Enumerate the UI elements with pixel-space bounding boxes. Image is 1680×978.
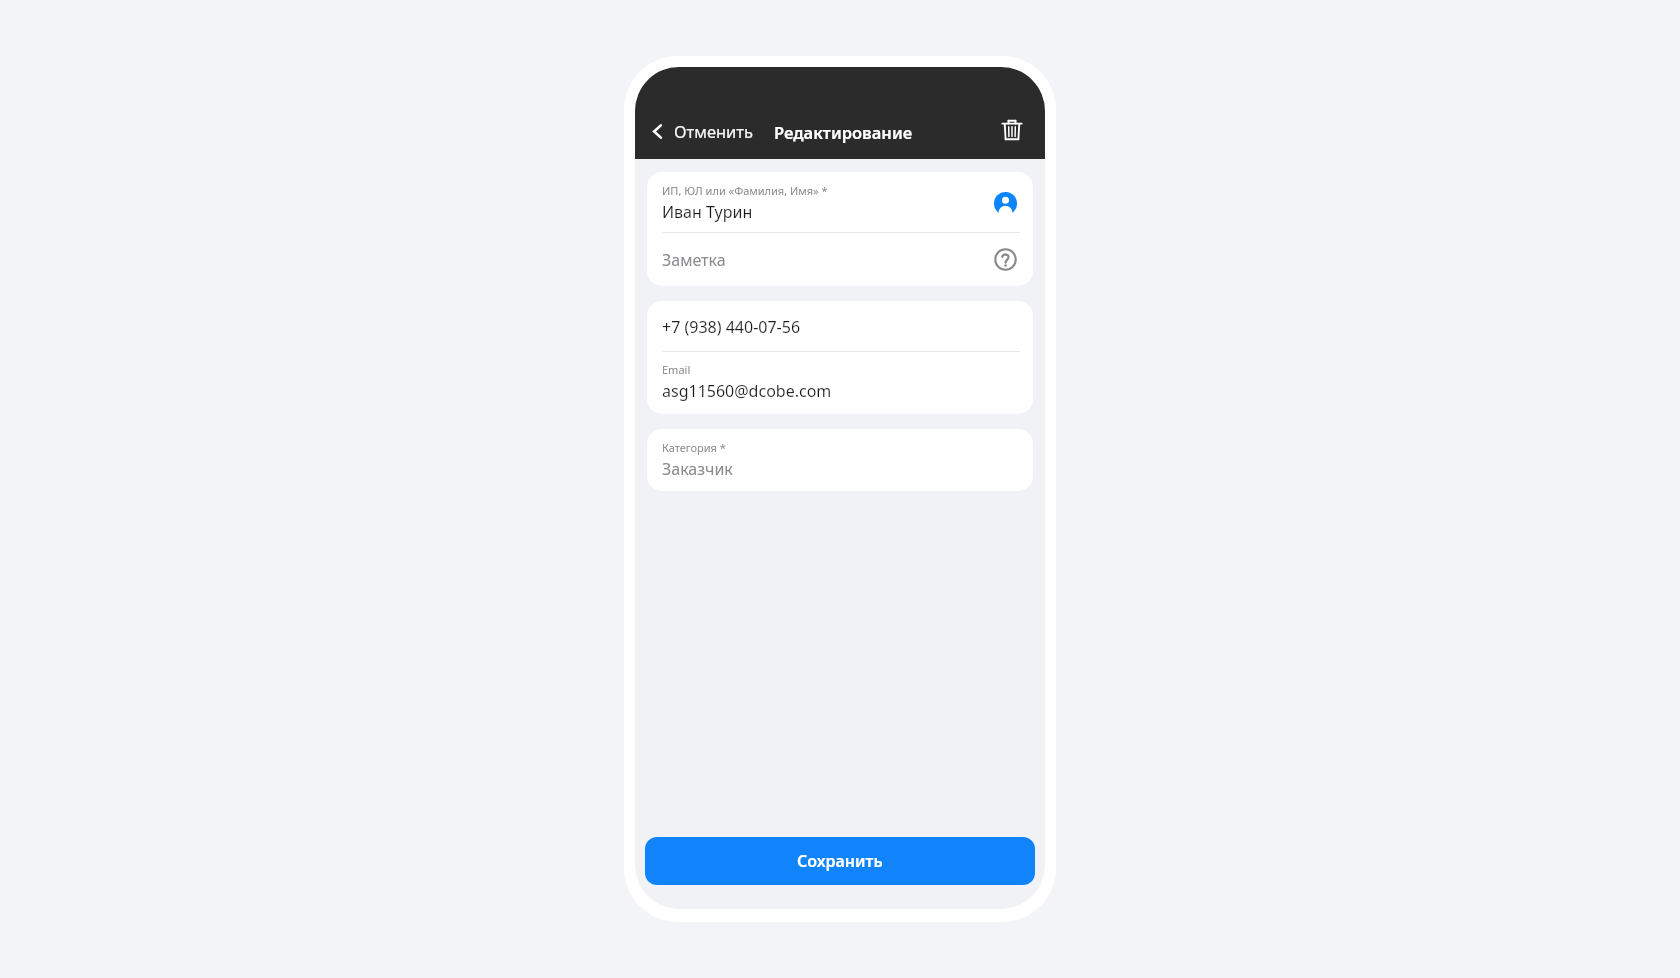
button[interactable]: Справка (991, 245, 1020, 274)
button[interactable]: Заметка (647, 233, 1033, 286)
staticText: Сохранить (797, 850, 883, 872)
staticText: Заметка (662, 249, 726, 271)
staticText: ИП, ЮЛ или «Фамилия, Имя» * (662, 183, 828, 198)
staticText: Email (662, 362, 691, 377)
button[interactable]: Отменить (643, 117, 760, 145)
staticText: asg11560@dcobe.com (662, 380, 832, 402)
button[interactable]: Сохранить (645, 837, 1035, 885)
button[interactable]: Категория * (647, 429, 1033, 491)
staticText: Иван Турин (662, 201, 753, 223)
button[interactable]: Выбрать контакт (991, 189, 1020, 218)
staticText: Редактирование (774, 121, 913, 143)
staticText: Отменить (674, 120, 754, 142)
button[interactable]: Удалить (991, 109, 1033, 151)
staticText: Заказчик (662, 458, 733, 480)
staticText: Категория * (662, 440, 726, 455)
button[interactable]: +7 (938) 440-07-56 (647, 301, 1033, 351)
staticText: +7 (938) 440-07-56 (662, 316, 801, 338)
button[interactable]: Email (647, 352, 1033, 414)
button[interactable]: ИП, ЮЛ или «Фамилия, Имя» * (647, 172, 1033, 232)
